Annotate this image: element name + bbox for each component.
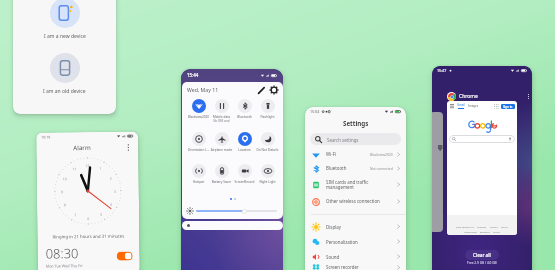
button[interactable]: Mobile data (210, 99, 233, 123)
staticText: 9 (61, 189, 63, 194)
staticText: 5 (100, 212, 102, 217)
staticText: Ringing in 21 hours and 31 minutes (37, 232, 139, 240)
staticText: 15:47 (437, 68, 447, 73)
staticText: 2 (110, 176, 112, 181)
staticText: Night Light (256, 180, 279, 184)
button[interactable]: Flashlight (256, 99, 279, 119)
staticText: Flashlight (256, 115, 279, 119)
staticText: Images (468, 104, 479, 108)
staticText: Search settings (327, 137, 359, 143)
staticText: Do Not Disturb (256, 148, 279, 152)
button[interactable]: More options (123, 142, 132, 152)
button[interactable]: Orientation L... (187, 132, 210, 152)
button[interactable]: Other wireless connection (305, 194, 406, 208)
staticText: 8 (64, 202, 66, 207)
staticText: Blackview2020 (187, 115, 210, 119)
button[interactable]: Edit (256, 85, 266, 95)
staticText: I am a new device (44, 33, 86, 40)
staticText: I am an old device (43, 88, 86, 95)
staticText: No SIM card (210, 119, 233, 123)
staticText: Screen recorder (326, 264, 396, 270)
button[interactable]: SIM cards and traffic management (305, 175, 406, 194)
staticText: 1 (99, 166, 102, 171)
staticText: 15:04 (310, 109, 320, 114)
button[interactable]: Screen recorder (305, 264, 406, 270)
staticText: Other wireless connection (326, 198, 396, 204)
button[interactable]: Personalization (305, 234, 406, 249)
button[interactable] (117, 251, 133, 261)
button[interactable]: Search settings (310, 133, 401, 145)
staticText: Personalization (326, 239, 396, 245)
button[interactable]: Location (233, 132, 256, 152)
button[interactable]: Airplane mode (210, 132, 233, 152)
button[interactable]: Night Light (256, 164, 279, 184)
staticText: Gmail (457, 103, 465, 107)
staticText: Sign in (503, 105, 513, 109)
button[interactable]: Clear all (465, 250, 499, 260)
button[interactable] (432, 112, 443, 232)
staticText: Bluetooth (233, 115, 256, 119)
staticText: Settings (343, 119, 369, 127)
staticText: Not connected (370, 166, 393, 170)
button[interactable]: Wi-Fi (305, 147, 406, 161)
staticText: Dark theme: off (456, 225, 474, 228)
staticText: Display (326, 224, 396, 230)
button[interactable]: Battery Saver (210, 164, 233, 184)
staticText: Privacy (490, 225, 498, 228)
staticText: 6 (87, 216, 89, 221)
staticText: 10:19 (41, 134, 51, 139)
staticText: 10 (63, 176, 67, 181)
staticText: Bluetooth (326, 165, 370, 171)
staticText: 15:44 (187, 72, 199, 78)
staticText: Airplane mode (210, 148, 233, 152)
button[interactable] (449, 135, 515, 143)
staticText: Orientation L... (187, 148, 210, 152)
button[interactable]: Bluetooth (233, 99, 256, 119)
button[interactable]: Hotspot (187, 164, 210, 184)
button[interactable]: Bluetooth (305, 161, 406, 175)
staticText: 4 (110, 202, 112, 207)
button[interactable]: I am a new device (13, 0, 116, 40)
staticText: Wi-Fi (326, 151, 370, 157)
staticText: Sound (326, 254, 396, 260)
button[interactable]: Blackview2020 (187, 99, 210, 119)
button[interactable]: Sign in (501, 104, 515, 109)
staticText: Advertising (464, 230, 477, 233)
staticText: Mon Tue Wed Thu Fri (46, 263, 83, 269)
staticText: Mobile data (210, 115, 233, 119)
button[interactable]: I am an old device (13, 53, 116, 95)
button[interactable]: Sound (305, 249, 406, 264)
staticText: Blackview2020 (370, 152, 393, 156)
staticText: Chrome (459, 93, 478, 100)
staticText: Location (233, 148, 256, 152)
staticText: SIM cards and traffic management (326, 179, 396, 191)
staticText: 08:30 (45, 244, 79, 262)
button[interactable]: Settings (269, 85, 279, 95)
button[interactable]: Display (305, 219, 406, 234)
staticText: About (493, 230, 500, 233)
staticText: Clear all (473, 252, 491, 258)
staticText: Free 2.9 GB / 4.0 GB (467, 261, 497, 265)
staticText: Wed, May 11 (187, 86, 219, 93)
staticText: Terms (501, 225, 508, 228)
staticText: Alarm (73, 143, 91, 151)
staticText: 7 (74, 212, 76, 217)
button[interactable]: Do Not Disturb (256, 132, 279, 152)
button[interactable]: More (524, 92, 532, 100)
staticText: 11 (72, 166, 77, 171)
staticText: ScreenRecord (233, 180, 256, 184)
staticText: Business (480, 230, 490, 233)
staticText: 12 (85, 163, 90, 168)
staticText: Hotspot (187, 180, 210, 184)
button[interactable]: ScreenRecord (233, 164, 256, 184)
staticText: 3 (114, 189, 116, 194)
staticText: Settings (477, 225, 487, 228)
staticText: Battery Saver (210, 180, 233, 184)
